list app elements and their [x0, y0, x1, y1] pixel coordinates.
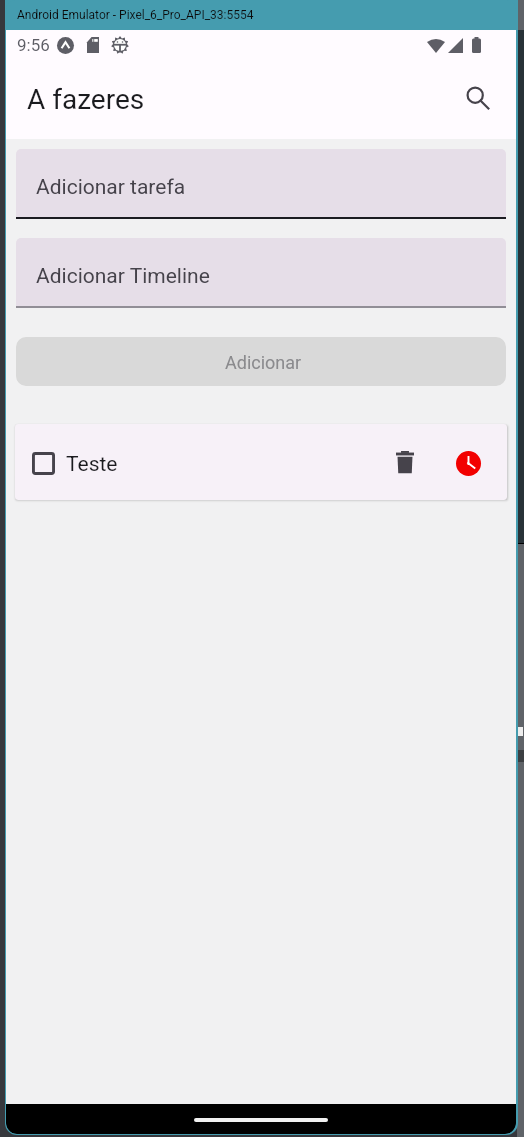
button[interactable]: Adicionar — [16, 337, 506, 386]
button[interactable]: Toggle task done — [15, 424, 507, 500]
button[interactable]: Adicionar tarefa — [16, 149, 506, 217]
staticText: A fazeres — [27, 83, 145, 116]
button[interactable]: Delete task — [386, 444, 424, 482]
staticText: Adicionar Timeline — [36, 264, 210, 289]
staticText: 9:56 — [17, 35, 50, 55]
button[interactable]: Search — [452, 72, 500, 120]
button[interactable]: Toggle task done — [25, 445, 61, 481]
staticText: Android Emulator - Pixel_6_Pro_API_33:55… — [17, 8, 254, 22]
staticText: Teste — [66, 452, 118, 477]
staticText: Adicionar — [225, 352, 302, 373]
staticText: Adicionar tarefa — [36, 175, 186, 200]
button[interactable]: Set reminder time — [451, 446, 485, 480]
button[interactable]: Adicionar Timeline — [16, 238, 506, 306]
